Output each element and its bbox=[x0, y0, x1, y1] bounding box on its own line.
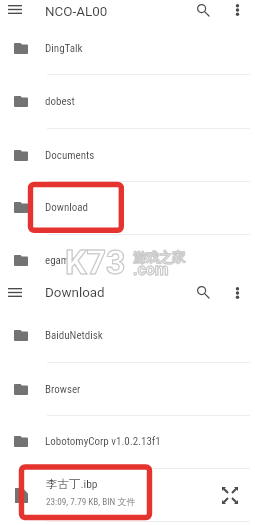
button[interactable]: Expand bbox=[222, 487, 238, 504]
button[interactable]: dobest bbox=[0, 74, 255, 128]
staticText: 李古丁.ibp bbox=[46, 477, 98, 491]
button[interactable]: Navigation menu bbox=[8, 5, 22, 14]
button[interactable]: DingTalk bbox=[0, 21, 255, 75]
staticText: Documents bbox=[45, 149, 95, 162]
button[interactable]: Documents bbox=[0, 128, 255, 182]
staticText: dobest bbox=[45, 95, 75, 108]
staticText: 23:09, 7.79 KB, BIN 文件 bbox=[46, 496, 136, 508]
staticText: Download bbox=[45, 201, 89, 214]
button[interactable]: LobotomyCorp v1.0.2.13f1 bbox=[0, 415, 255, 468]
staticText: 游戏之家 bbox=[133, 249, 185, 265]
button[interactable]: More options bbox=[236, 287, 239, 299]
button[interactable]: Download bbox=[0, 181, 255, 234]
button[interactable]: Navigation menu bbox=[8, 288, 22, 297]
staticText: 游戏之家 bbox=[133, 249, 185, 265]
staticText: .com bbox=[133, 260, 169, 279]
staticText: .com bbox=[133, 260, 169, 279]
staticText: egame bbox=[45, 254, 75, 267]
staticText: DingTalk bbox=[45, 42, 83, 55]
staticText: Browser bbox=[45, 383, 81, 396]
button[interactable]: Search bbox=[197, 286, 210, 299]
button[interactable]: Browser bbox=[0, 362, 255, 416]
staticText: NCO-AL00 bbox=[45, 4, 108, 20]
staticText: K73 bbox=[65, 242, 126, 282]
button[interactable]: 李古丁.ibp bbox=[0, 468, 255, 521]
staticText: BaiduNetdisk bbox=[45, 329, 103, 342]
button[interactable]: More options bbox=[236, 4, 239, 16]
button[interactable]: BaiduNetdisk bbox=[0, 308, 255, 362]
button[interactable]: Search bbox=[197, 4, 210, 17]
staticText: Download bbox=[45, 285, 105, 301]
button[interactable]: egame bbox=[0, 234, 255, 287]
staticText: LobotomyCorp v1.0.2.13f1 bbox=[45, 435, 161, 448]
staticText: K73 bbox=[65, 242, 126, 282]
